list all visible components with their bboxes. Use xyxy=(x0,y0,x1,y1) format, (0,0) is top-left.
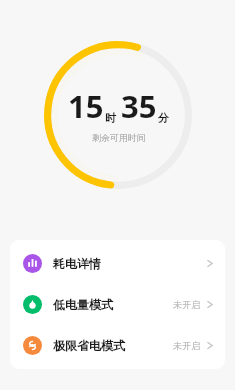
staticText: 未开启 xyxy=(173,340,200,351)
other: Open 低电量模式 xyxy=(207,299,213,310)
button[interactable]: 耗电详情 xyxy=(10,243,225,284)
staticText: 35 xyxy=(121,85,157,127)
button[interactable]: 低电量模式 xyxy=(10,284,225,325)
staticText: 耗电详情 xyxy=(53,256,207,271)
staticText: 剩余可用时间 xyxy=(92,132,146,143)
other: Open 极限省电模式 xyxy=(207,340,213,351)
button[interactable]: 极限省电模式 xyxy=(10,325,225,366)
staticText: 低电量模式 xyxy=(53,297,173,312)
staticText: 分 xyxy=(158,111,169,125)
staticText: 未开启 xyxy=(173,299,200,310)
staticText: 时 xyxy=(105,111,116,125)
other: Open 耗电详情 xyxy=(207,258,213,269)
staticText: 15 xyxy=(68,85,104,127)
staticText: 极限省电模式 xyxy=(53,338,173,353)
